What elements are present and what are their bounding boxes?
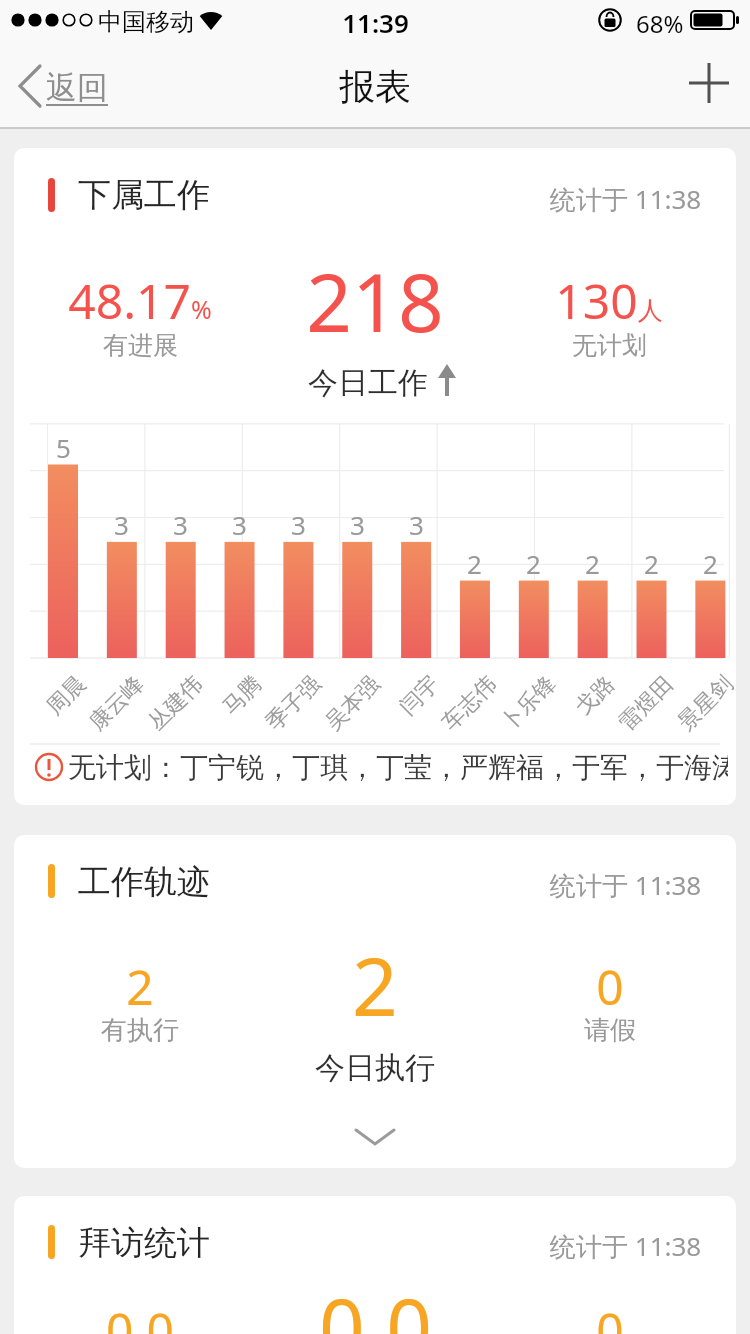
button[interactable]	[10, 56, 120, 116]
staticText: 统计于 11:38	[550, 1228, 702, 1264]
staticText: 康云峰	[83, 670, 148, 735]
staticText: 3	[291, 507, 306, 542]
staticText: 3	[232, 507, 247, 542]
staticText: 戈路	[570, 670, 619, 719]
staticText: 卜乐锋	[495, 670, 560, 735]
staticText: 2	[467, 546, 482, 581]
staticText: 0.0	[106, 1297, 174, 1334]
staticText: 130人	[555, 268, 663, 333]
staticText: 马腾	[217, 670, 266, 719]
staticText: 雷煜田	[613, 670, 678, 735]
staticText: 2	[126, 954, 154, 1019]
staticText: 2	[352, 930, 398, 1039]
staticText: 统计于 11:38	[550, 867, 702, 903]
staticText: 返回	[46, 68, 108, 107]
button[interactable]	[325, 1110, 425, 1160]
staticText: 今日执行	[315, 1049, 435, 1087]
button[interactable]	[14, 1196, 736, 1334]
staticText: 3	[173, 507, 188, 542]
staticText: 请假	[584, 1014, 636, 1047]
staticText: 今日工作	[308, 364, 428, 402]
staticText: 2	[526, 546, 541, 581]
staticText: 中国移动	[98, 7, 194, 37]
staticText: 有执行	[101, 1014, 179, 1047]
staticText: 报表	[339, 64, 411, 109]
staticText: 218	[306, 246, 444, 355]
button[interactable]	[14, 148, 736, 805]
staticText: 2	[644, 546, 659, 581]
staticText: 无计划	[572, 330, 647, 361]
staticText: 3	[114, 507, 129, 542]
staticText: 3	[409, 507, 424, 542]
staticText: 闫宇	[394, 670, 443, 719]
staticText: 工作轨迹	[78, 861, 210, 903]
staticText: 统计于 11:38	[550, 181, 702, 217]
staticText: 11:39	[342, 5, 409, 40]
staticText: 景星剑	[672, 670, 737, 735]
staticText: 丛建伟	[142, 670, 207, 735]
staticText: 0	[596, 954, 624, 1019]
staticText: 3	[350, 507, 365, 542]
staticText: 48.17%	[68, 268, 212, 333]
staticText: 车志伟	[436, 670, 501, 735]
staticText: 2	[585, 546, 600, 581]
staticText: 68%	[636, 7, 684, 40]
staticText: 周晨	[41, 670, 90, 719]
button[interactable]	[14, 835, 736, 1168]
staticText: 无计划：丁宁锐，丁琪，丁莹，严辉福，于军，于海涛，代：	[68, 750, 728, 785]
staticText: 0	[596, 1297, 624, 1334]
staticText: 0.0	[319, 1271, 432, 1334]
staticText: 5	[56, 430, 71, 465]
staticText: 有进展	[103, 330, 178, 361]
button[interactable]	[679, 53, 739, 113]
staticText: 季子强	[260, 670, 325, 735]
staticText: 吴本强	[319, 670, 384, 735]
staticText: 下属工作	[78, 174, 210, 216]
staticText: 2	[703, 546, 718, 581]
staticText: 拜访统计	[78, 1222, 210, 1264]
